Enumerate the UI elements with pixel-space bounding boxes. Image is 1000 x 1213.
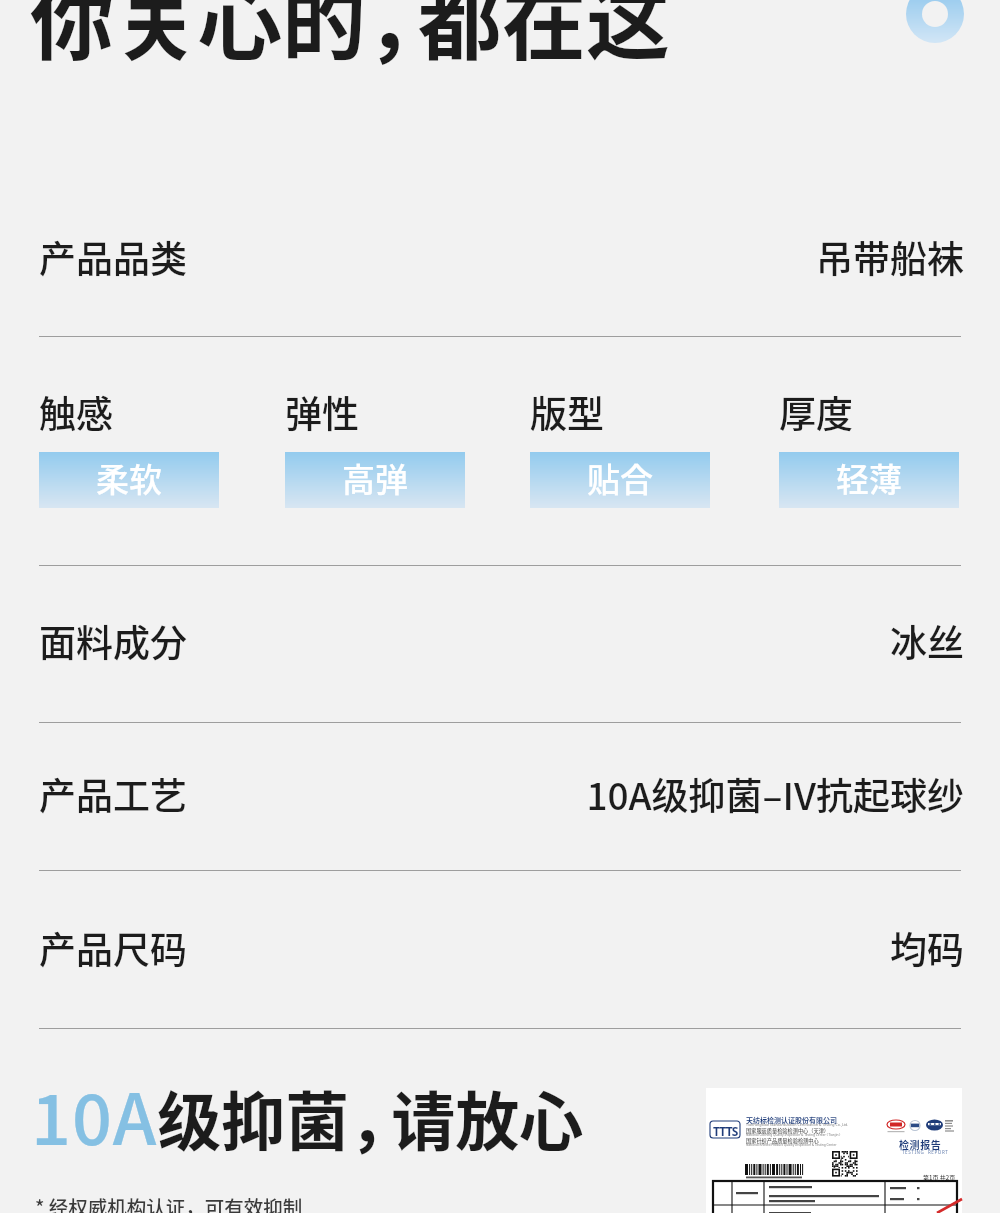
- staticText: 贴合: [587, 454, 653, 502]
- button[interactable]: 产品尺码: [0, 921, 1000, 971]
- staticText: 版型: [530, 385, 604, 439]
- staticText: * 经权威机构认证，可有效抑制: [35, 1192, 303, 1213]
- staticText: TianFangBiao Standardization Certificati…: [746, 1122, 849, 1127]
- button[interactable]: 贴合: [530, 452, 710, 508]
- button[interactable]: 产品品类: [0, 230, 1000, 280]
- staticText: National Knitted Product Quality Inspect…: [746, 1143, 837, 1147]
- staticText: 轻薄: [836, 454, 902, 502]
- staticText: TTTS: [713, 1123, 738, 1139]
- staticText: 触感: [39, 385, 113, 439]
- staticText: 天纺标检测认证股份有限公司: [746, 1115, 837, 1125]
- button[interactable]: 轻薄: [779, 452, 959, 508]
- staticText: 产品尺码: [39, 921, 187, 971]
- staticText: TESTING REPORT: [902, 1149, 949, 1155]
- staticText: 高弹: [342, 454, 408, 502]
- staticText: 国家针织产品质量检验检测中心: [746, 1137, 819, 1145]
- staticText: 国家服装质量检验检测中心（天津）: [746, 1127, 830, 1135]
- other: Test report certificate: [706, 1088, 962, 1213]
- staticText: 弹性: [285, 385, 359, 439]
- staticText: 柔软: [96, 454, 162, 502]
- staticText: 第1页 共2页: [923, 1173, 956, 1182]
- button[interactable]: 面料成分: [0, 614, 1000, 664]
- staticText: National Clothing Quality Inspection & T…: [746, 1133, 841, 1137]
- staticText: 你关心的，都在这: [30, 0, 671, 78]
- other: Decoration: [906, 0, 964, 43]
- staticText: 10A级抑菌，请放心: [31, 1064, 584, 1165]
- staticText: 产品品类: [39, 230, 187, 280]
- staticText: 吊带船袜: [0, 230, 964, 280]
- button[interactable]: 柔软: [39, 452, 219, 508]
- staticText: 厚度: [779, 385, 853, 439]
- staticText: 均码: [0, 921, 964, 971]
- button[interactable]: 产品工艺: [0, 767, 1000, 817]
- staticText: 检测报告: [899, 1137, 942, 1151]
- staticText: 产品工艺: [39, 767, 187, 817]
- staticText: 冰丝: [0, 614, 964, 664]
- button[interactable]: 高弹: [285, 452, 465, 508]
- staticText: 10A级抑菌–IV抗起球纱: [0, 767, 964, 817]
- staticText: 面料成分: [39, 614, 187, 664]
